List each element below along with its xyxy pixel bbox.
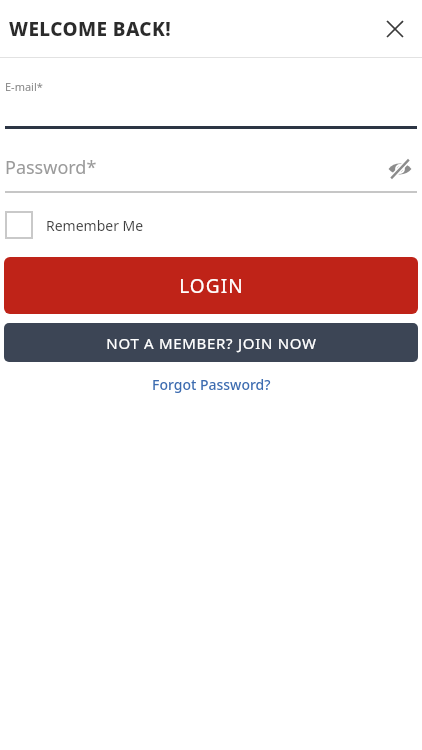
button[interactable]: Forgot Password? xyxy=(142,370,281,399)
button[interactable]: Show password xyxy=(383,152,417,186)
staticText: E-mail* xyxy=(5,79,43,94)
button[interactable]: Remember Me xyxy=(5,209,144,241)
button[interactable]: LOGIN xyxy=(4,257,418,314)
button[interactable]: E-mail* xyxy=(5,79,417,129)
staticText: Remember Me xyxy=(46,216,144,235)
staticText: LOGIN xyxy=(179,273,244,299)
button[interactable]: Close xyxy=(374,8,416,50)
staticText: NOT A MEMBER? JOIN NOW xyxy=(106,333,317,353)
staticText: WELCOME BACK! xyxy=(9,16,172,42)
staticText: Forgot Password? xyxy=(152,375,271,394)
button[interactable]: NOT A MEMBER? JOIN NOW xyxy=(4,323,418,362)
button[interactable]: Password* xyxy=(5,151,417,185)
staticText: Password* xyxy=(5,155,97,180)
